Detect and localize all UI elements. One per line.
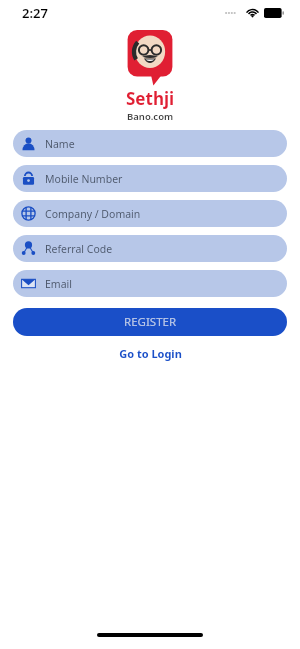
button[interactable]: Name <box>13 130 287 157</box>
staticText: Referral Code <box>45 242 113 256</box>
button[interactable]: Email <box>13 270 287 297</box>
button[interactable]: Mobile Number <box>13 165 287 192</box>
staticText: Bano.com <box>127 110 174 123</box>
staticText: Sethji <box>126 87 175 110</box>
button[interactable]: Company / Domain <box>13 200 287 227</box>
staticText: Name <box>45 137 75 151</box>
button[interactable]: Go to Login <box>107 344 194 363</box>
staticText: Email <box>45 277 72 291</box>
staticText: 2:27 <box>22 4 48 22</box>
button[interactable]: Referral Code <box>13 235 287 262</box>
staticText: Company / Domain <box>45 207 141 221</box>
staticText: REGISTER <box>124 314 177 330</box>
staticText: Mobile Number <box>45 172 123 186</box>
staticText: Go to Login <box>119 346 182 361</box>
button[interactable]: REGISTER <box>13 308 287 336</box>
